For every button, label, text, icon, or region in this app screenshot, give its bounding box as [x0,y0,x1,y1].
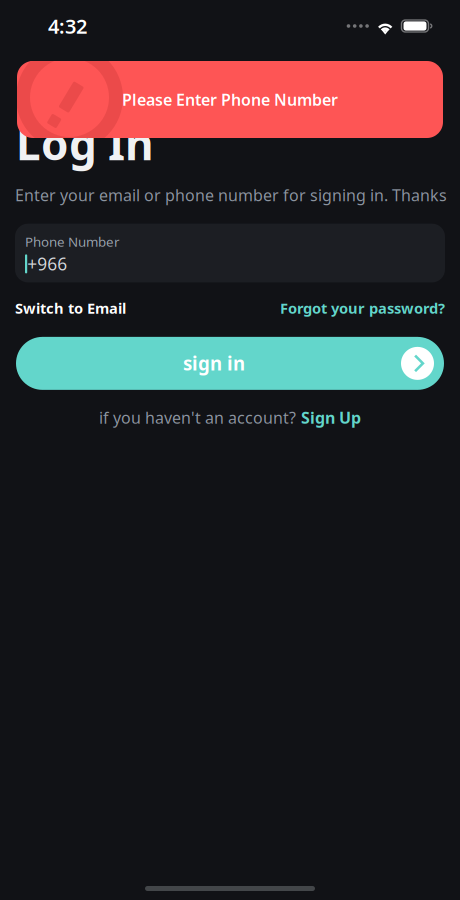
staticText: Switch to Email [15,298,126,318]
staticText: if you haven't an account? [99,407,296,428]
button[interactable]: Switch to Email [15,298,126,318]
staticText: Please Enter Phone Number [122,89,338,110]
button[interactable]: Forgot your password? [280,298,445,318]
staticText: Phone Number [25,233,120,250]
staticText: 4:32 [48,13,87,39]
staticText: Sign Up [301,407,361,428]
staticText: +966 [27,252,67,275]
button[interactable]: sign in [0,337,460,390]
staticText: Enter your email or phone number for sig… [15,184,447,206]
staticText: sign in [183,351,245,376]
button[interactable]: Sign Up [301,407,361,428]
staticText: Log In [16,114,154,172]
staticText: Forgot your password? [280,298,445,318]
